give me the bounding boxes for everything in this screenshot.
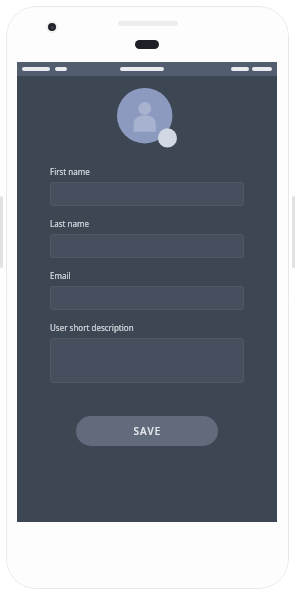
- staticText: First name: [50, 166, 90, 177]
- staticText: Last name: [50, 218, 89, 229]
- staticText: User short description: [50, 322, 134, 333]
- staticText: Email: [50, 270, 71, 281]
- button[interactable]: SAVE: [76, 416, 218, 446]
- staticText: SAVE: [133, 424, 162, 438]
